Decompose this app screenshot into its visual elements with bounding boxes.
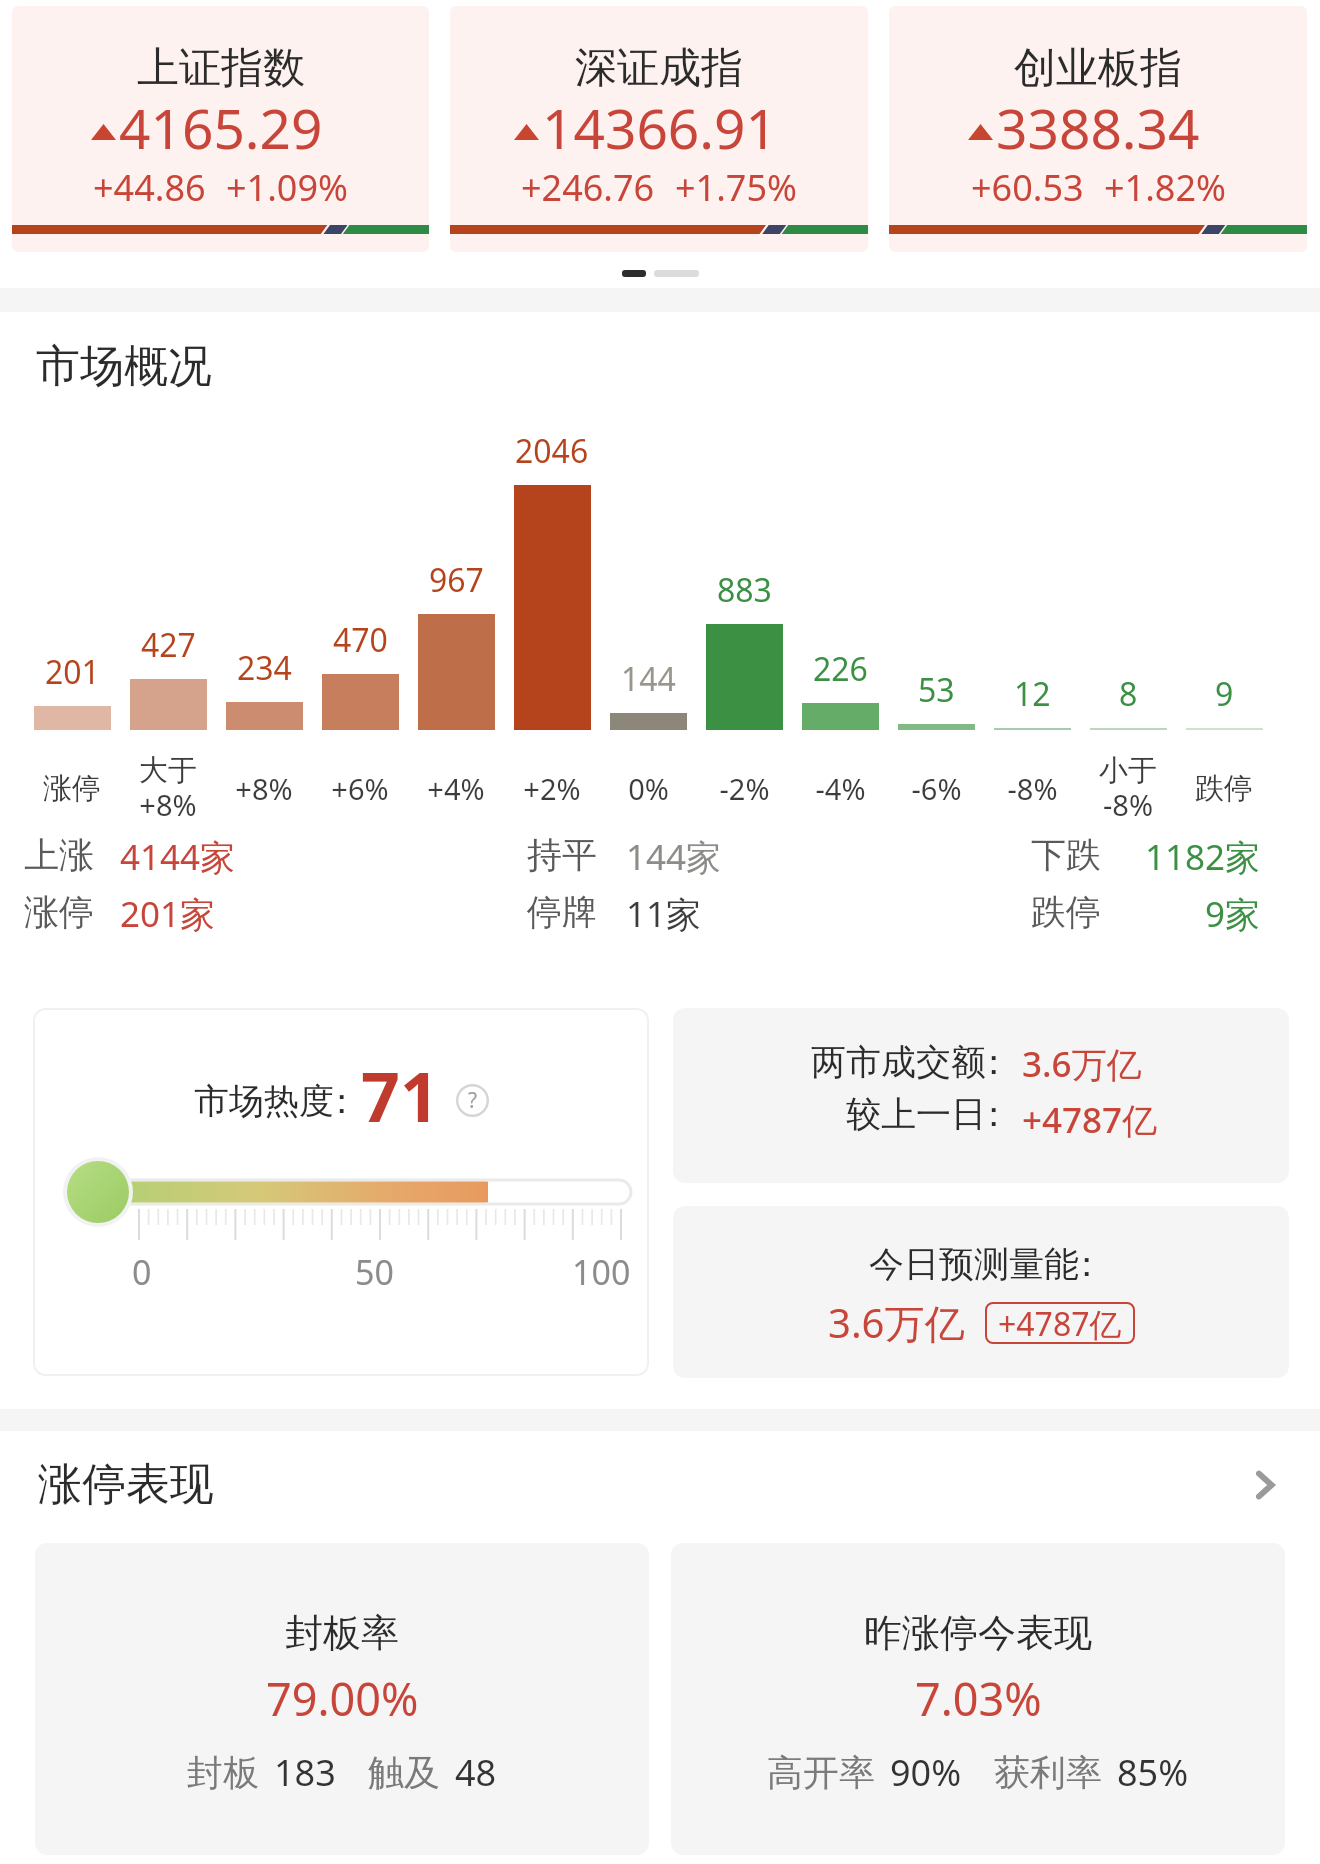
staticText: 昨涨停今表现 — [864, 1609, 1092, 1657]
staticText: 获利率 — [994, 1750, 1102, 1795]
staticText: ： — [324, 1079, 339, 1123]
staticText: +44.86 — [93, 163, 206, 212]
staticText: 市场概况 — [36, 339, 212, 394]
staticText: 71 — [361, 1049, 439, 1142]
staticText: -2% — [719, 769, 770, 808]
staticText: 今日预测量能 — [869, 1242, 1079, 1286]
other: More limit-up performance — [1250, 1470, 1280, 1500]
staticText: 市场热度 — [194, 1079, 334, 1123]
staticText: 较上一日 — [846, 1092, 986, 1136]
staticText: 创业板指 — [1014, 42, 1182, 95]
staticText: 883 — [717, 568, 772, 612]
staticText: 4165.29 — [119, 90, 323, 165]
staticText: +4% — [427, 769, 485, 808]
staticText: 100 — [572, 1249, 631, 1295]
staticText: 226 — [813, 647, 868, 691]
staticText: 3.6万亿 — [828, 1295, 965, 1350]
button[interactable]: 两市成交额 — [673, 1008, 1289, 1183]
staticText: 深证成指 — [575, 42, 743, 95]
staticText: 跌停 — [1195, 770, 1253, 807]
staticText: 1182家 — [1145, 833, 1261, 881]
staticText: 144 — [621, 657, 676, 701]
staticText: 8 — [1119, 672, 1138, 716]
staticText: 7.03% — [915, 1668, 1042, 1729]
staticText: 涨停表现 — [38, 1457, 214, 1512]
staticText: 涨停 — [24, 890, 94, 934]
staticText: 48 — [455, 1748, 497, 1797]
staticText: ： — [976, 1040, 991, 1084]
staticText: 0% — [628, 769, 669, 808]
staticText: 12 — [1014, 672, 1051, 716]
button[interactable]: Help — [456, 1084, 489, 1117]
staticText: 3.6万亿 — [1022, 1040, 1142, 1088]
staticText: 9家 — [1205, 890, 1261, 938]
staticText: 2046 — [515, 429, 589, 473]
staticText: 144家 — [626, 833, 722, 881]
staticText: 234 — [237, 646, 292, 690]
staticText: 两市成交额 — [811, 1040, 986, 1084]
staticText: 大于 +8% — [139, 752, 197, 824]
staticText: 触及 — [368, 1750, 440, 1795]
staticText: ： — [976, 1092, 991, 1136]
staticText: +246.76 — [521, 163, 655, 212]
staticText: 79.00% — [266, 1668, 419, 1729]
staticText: ： — [1069, 1242, 1084, 1286]
staticText: 高开率 — [767, 1750, 875, 1795]
staticText: 0 — [132, 1249, 152, 1295]
staticText: +60.53 — [971, 163, 1084, 212]
staticText: 持平 — [527, 833, 597, 877]
staticText: 967 — [429, 558, 484, 602]
staticText: 201家 — [120, 890, 216, 938]
staticText: 下跌 — [1031, 833, 1101, 877]
staticText: +1.09% — [226, 163, 348, 212]
staticText: +8% — [235, 769, 293, 808]
button[interactable]: 市场热度 — [33, 1008, 649, 1376]
staticText: -8% — [1007, 769, 1058, 808]
staticText: 50 — [355, 1249, 394, 1295]
staticText: -6% — [911, 769, 962, 808]
staticText: 上证指数 — [137, 42, 305, 95]
staticText: 上涨 — [24, 833, 94, 877]
staticText: 90% — [890, 1748, 962, 1797]
staticText: 470 — [333, 618, 388, 662]
staticText: 85% — [1117, 1748, 1189, 1797]
staticText: 跌停 — [1031, 890, 1101, 934]
button[interactable]: 上证指数 — [12, 6, 429, 252]
staticText: 53 — [918, 668, 955, 712]
staticText: 4144家 — [120, 833, 236, 881]
staticText: 停牌 — [527, 890, 597, 934]
button[interactable]: 涨停表现 — [38, 1457, 1280, 1512]
staticText: +2% — [523, 769, 581, 808]
staticText: ? — [468, 1086, 478, 1115]
staticText: 封板 — [187, 1750, 259, 1795]
staticText: 封板率 — [285, 1609, 399, 1657]
staticText: 3388.34 — [996, 90, 1200, 165]
staticText: 427 — [141, 623, 196, 667]
staticText: 涨停 — [43, 770, 101, 807]
button[interactable]: 封板率 — [35, 1543, 649, 1855]
staticText: +4787亿 — [998, 1302, 1122, 1344]
staticText: 9 — [1215, 672, 1234, 716]
staticText: +1.82% — [1104, 163, 1226, 212]
staticText: 11家 — [626, 890, 702, 938]
button[interactable]: 今日预测量能 — [673, 1206, 1289, 1378]
staticText: 14366.91 — [542, 90, 777, 165]
staticText: 183 — [274, 1748, 336, 1797]
staticText: 201 — [45, 650, 100, 694]
button[interactable]: 深证成指 — [450, 6, 868, 252]
staticText: 小于 -8% — [1099, 752, 1157, 824]
button[interactable]: 昨涨停今表现 — [671, 1543, 1285, 1855]
staticText: +6% — [331, 769, 389, 808]
button[interactable]: 创业板指 — [889, 6, 1307, 252]
staticText: +1.75% — [675, 163, 797, 212]
staticText: -4% — [815, 769, 866, 808]
staticText: +4787亿 — [1022, 1096, 1158, 1144]
